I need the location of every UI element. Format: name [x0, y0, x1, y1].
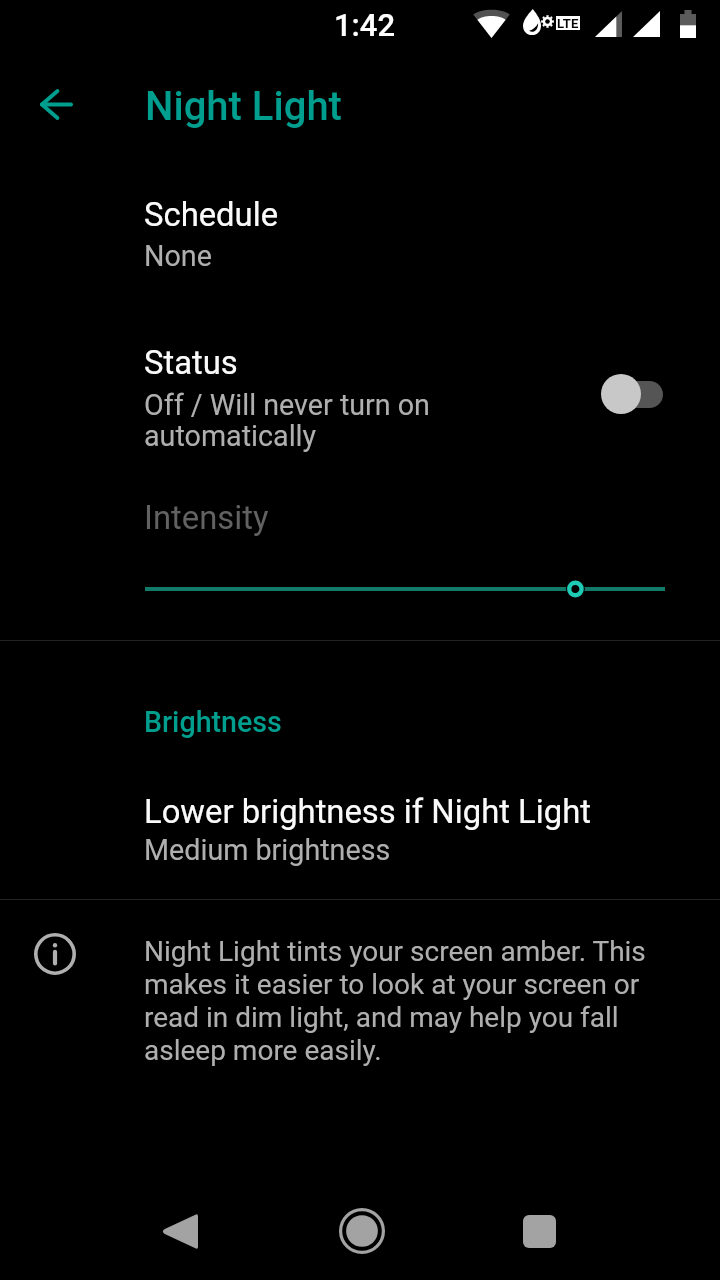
staticText: Off / Will never turn on automatically — [144, 388, 448, 453]
button[interactable]: Recent apps — [479, 1171, 599, 1280]
staticText: Schedule — [144, 196, 279, 234]
button[interactable]: Back — [120, 1171, 240, 1280]
staticText: Night Light tints your screen amber. Thi… — [144, 935, 676, 1067]
staticText: Night Light — [145, 83, 342, 130]
button[interactable]: Lower brightness if Night Light — [0, 776, 720, 880]
staticText: Brightness — [144, 705, 282, 739]
staticText: Lower brightness if Night Light — [144, 793, 591, 831]
staticText: LTE — [557, 16, 579, 30]
staticText: None — [144, 239, 212, 273]
button[interactable]: Home — [302, 1171, 422, 1280]
staticText: 1:42 — [334, 7, 396, 43]
button[interactable]: Navigate up — [12, 60, 100, 148]
button[interactable]: Schedule — [0, 180, 720, 280]
staticText: Medium brightness — [144, 833, 391, 867]
button[interactable]: Status, off — [601, 374, 663, 414]
button[interactable]: Status — [0, 328, 720, 460]
staticText: Intensity — [144, 499, 269, 537]
staticText: Status — [144, 344, 238, 382]
